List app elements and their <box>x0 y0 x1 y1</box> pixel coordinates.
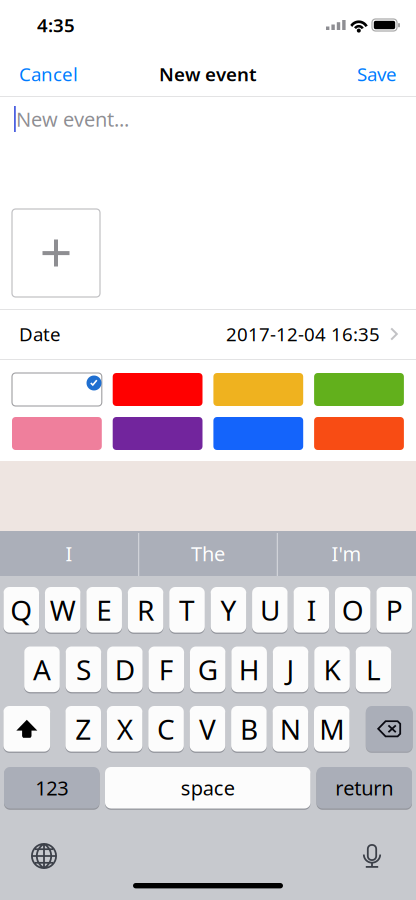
button[interactable]: B <box>231 706 267 752</box>
button[interactable]: Color swatch <box>113 373 202 406</box>
staticText: The <box>191 540 225 567</box>
button[interactable]: Color swatch <box>213 417 303 450</box>
button[interactable]: Delete <box>366 706 413 752</box>
staticText: A <box>33 651 51 688</box>
staticText: W <box>50 591 76 628</box>
staticText: U <box>260 591 280 628</box>
staticText: 123 <box>35 774 68 801</box>
button[interactable]: I <box>0 531 138 576</box>
button[interactable]: Color swatch <box>12 417 102 450</box>
button[interactable]: O <box>335 587 370 633</box>
button[interactable]: X <box>107 706 142 752</box>
button[interactable]: J <box>273 646 308 692</box>
staticText: Save <box>357 62 397 86</box>
staticText: B <box>240 710 258 747</box>
button[interactable]: Shift <box>3 706 50 752</box>
button[interactable]: E <box>86 587 122 633</box>
staticText: return <box>335 774 393 801</box>
staticText: S <box>76 651 91 688</box>
button[interactable]: G <box>190 646 225 692</box>
staticText: V <box>199 710 216 747</box>
button[interactable]: K <box>314 646 350 692</box>
button[interactable]: Save <box>316 52 416 96</box>
staticText: D <box>115 651 135 688</box>
button[interactable]: Z <box>65 706 101 752</box>
button[interactable]: The <box>139 531 277 576</box>
staticText: T <box>179 591 195 628</box>
button[interactable]: Y <box>211 587 246 633</box>
staticText: Date <box>19 322 61 346</box>
button[interactable]: Color swatch <box>314 373 404 406</box>
button[interactable]: 123 <box>4 767 99 808</box>
button[interactable]: V <box>190 706 225 752</box>
button[interactable]: M <box>314 706 350 752</box>
button[interactable]: S <box>66 646 101 692</box>
button[interactable]: T <box>169 587 205 633</box>
staticText: C <box>157 710 175 747</box>
staticText: J <box>287 651 295 688</box>
staticText: I <box>65 540 72 567</box>
button[interactable]: F <box>148 646 184 692</box>
button[interactable]: I <box>293 587 329 633</box>
button[interactable]: space <box>105 767 310 808</box>
button[interactable]: A <box>24 646 60 692</box>
staticText: 4:35 <box>37 13 75 37</box>
button[interactable]: H <box>231 646 267 692</box>
button[interactable]: P <box>376 587 412 633</box>
button[interactable]: Add photo <box>12 209 100 297</box>
button[interactable]: Next keyboard <box>31 843 57 869</box>
button[interactable]: Date <box>0 310 416 358</box>
staticText: X <box>117 710 133 747</box>
button[interactable]: return <box>316 767 412 808</box>
button[interactable]: Color swatch <box>12 373 102 406</box>
button[interactable]: Color swatch <box>213 373 303 406</box>
staticText: H <box>239 651 260 688</box>
staticText: Q <box>10 591 32 628</box>
staticText: Y <box>220 591 236 628</box>
button[interactable]: Cancel <box>0 52 100 96</box>
staticText: Z <box>75 710 91 747</box>
button[interactable]: Q <box>3 587 39 633</box>
button[interactable]: L <box>356 646 391 692</box>
button[interactable]: I'm <box>277 531 415 576</box>
staticText: space <box>181 774 235 801</box>
button[interactable]: R <box>128 587 163 633</box>
button[interactable]: U <box>252 587 288 633</box>
staticText: New event... <box>16 106 129 132</box>
button[interactable]: Dictation <box>361 843 382 868</box>
button[interactable]: Color swatch <box>314 417 404 450</box>
staticText: I <box>307 591 316 628</box>
staticText: E <box>96 591 112 628</box>
button[interactable]: D <box>107 646 143 692</box>
staticText: I'm <box>331 540 361 567</box>
staticText: M <box>319 710 344 747</box>
button[interactable]: Color swatch <box>113 417 202 450</box>
staticText: R <box>137 591 154 628</box>
staticText: F <box>159 651 174 688</box>
staticText: G <box>198 651 218 688</box>
staticText: L <box>366 651 381 688</box>
button[interactable]: N <box>273 706 308 752</box>
button[interactable]: W <box>45 587 80 633</box>
staticText: New event <box>159 62 257 86</box>
staticText: K <box>323 651 340 688</box>
staticText: 2017-12-04 16:35 <box>226 322 380 346</box>
staticText: P <box>386 591 403 628</box>
staticText: Cancel <box>19 62 78 86</box>
staticText: O <box>342 591 364 628</box>
button[interactable]: C <box>148 706 184 752</box>
staticText: N <box>280 710 301 747</box>
